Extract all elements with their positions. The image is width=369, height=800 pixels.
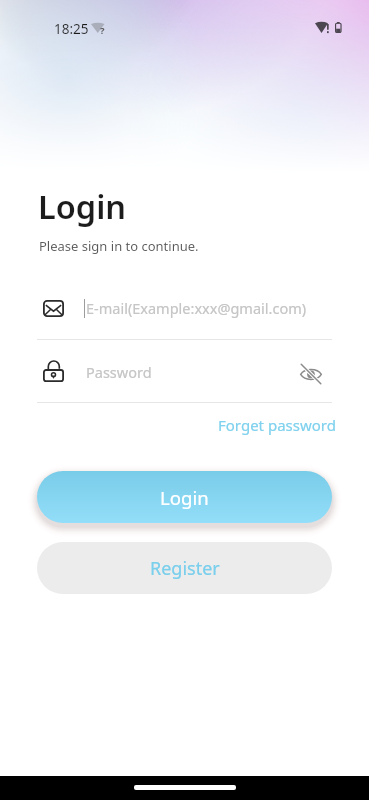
staticText: ?: [100, 24, 105, 37]
staticText: Password: [86, 362, 152, 382]
staticText: Please sign in to continue.: [39, 237, 199, 255]
staticText: Login: [38, 184, 127, 228]
staticText: 18:25: [54, 20, 89, 38]
staticText: E-mail(Example:xxx@gmail.com): [86, 298, 307, 318]
staticText: Register: [150, 556, 220, 581]
button[interactable]: Forget password: [217, 410, 337, 440]
button[interactable]: Password: [37, 359, 332, 402]
button[interactable]: Register: [37, 542, 332, 594]
button[interactable]: Login: [37, 471, 332, 523]
staticText: Forget password: [218, 415, 336, 435]
button[interactable]: Show password: [296, 359, 326, 389]
staticText: Login: [160, 485, 209, 510]
button[interactable]: E-mail(Example:xxx@gmail.com): [37, 296, 332, 339]
